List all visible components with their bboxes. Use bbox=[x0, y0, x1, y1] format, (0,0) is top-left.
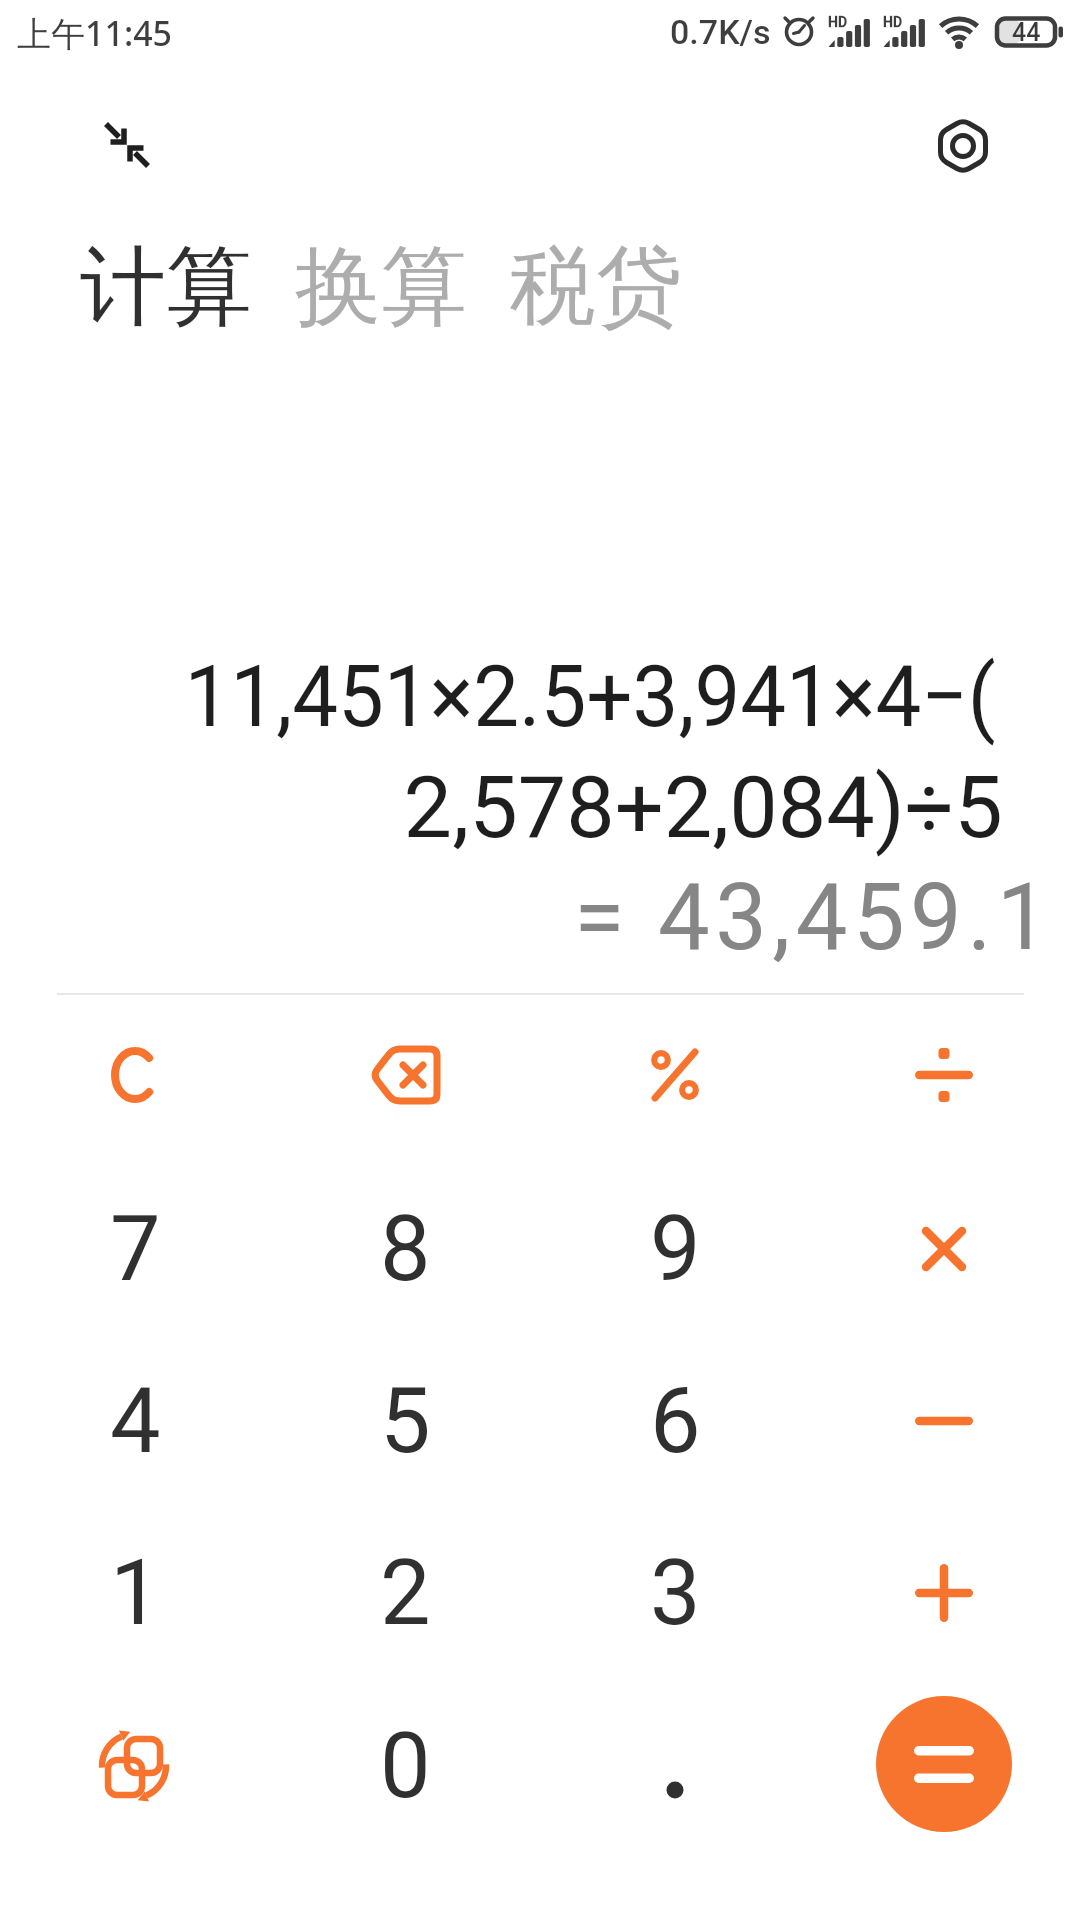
button[interactable] bbox=[925, 108, 1001, 184]
button[interactable]: 1 bbox=[10, 1513, 260, 1673]
staticText: 44 bbox=[1012, 18, 1041, 47]
button[interactable] bbox=[819, 995, 1069, 1155]
button[interactable]: 3 bbox=[550, 1513, 800, 1673]
button[interactable]: 7 bbox=[10, 1169, 260, 1329]
staticText: 6 bbox=[650, 1369, 701, 1474]
staticText: 0.7K/s bbox=[670, 12, 771, 52]
button[interactable] bbox=[550, 1686, 800, 1846]
button[interactable]: 9 bbox=[550, 1169, 800, 1329]
staticText: 2,578+2,084)÷5 bbox=[404, 757, 1003, 858]
button[interactable] bbox=[10, 995, 260, 1155]
button[interactable]: 2 bbox=[280, 1513, 530, 1673]
button[interactable]: 换算 bbox=[295, 233, 467, 341]
staticText: 1 bbox=[110, 1541, 161, 1646]
staticText: 9 bbox=[650, 1197, 701, 1302]
staticText: 3 bbox=[650, 1541, 701, 1646]
button[interactable] bbox=[876, 1696, 1012, 1832]
button[interactable] bbox=[819, 1341, 1069, 1501]
button[interactable]: 0 bbox=[280, 1686, 530, 1846]
staticText: 2 bbox=[380, 1541, 431, 1646]
button[interactable]: 4 bbox=[10, 1341, 260, 1501]
button[interactable]: 5 bbox=[280, 1341, 530, 1501]
button[interactable]: 税贷 bbox=[510, 233, 682, 341]
staticText: 11,451×2.5+3,941×4−( bbox=[184, 646, 996, 747]
button[interactable] bbox=[83, 101, 171, 189]
staticText: 8 bbox=[380, 1197, 431, 1302]
button[interactable] bbox=[10, 1686, 260, 1846]
staticText: HD bbox=[828, 14, 848, 30]
staticText: 0 bbox=[380, 1714, 431, 1819]
staticText: 4 bbox=[110, 1369, 161, 1474]
button[interactable] bbox=[819, 1513, 1069, 1673]
staticText: 上午11:45 bbox=[17, 10, 173, 56]
staticText: 7 bbox=[110, 1197, 161, 1302]
staticText: HD bbox=[883, 14, 903, 30]
button[interactable]: 6 bbox=[550, 1341, 800, 1501]
button[interactable]: 8 bbox=[280, 1169, 530, 1329]
button[interactable] bbox=[819, 1169, 1069, 1329]
staticText: = 43,459.1 bbox=[574, 864, 1054, 972]
button[interactable] bbox=[550, 995, 800, 1155]
staticText: 5 bbox=[380, 1369, 431, 1474]
button[interactable]: 计算 bbox=[80, 233, 252, 341]
button[interactable] bbox=[280, 995, 530, 1155]
